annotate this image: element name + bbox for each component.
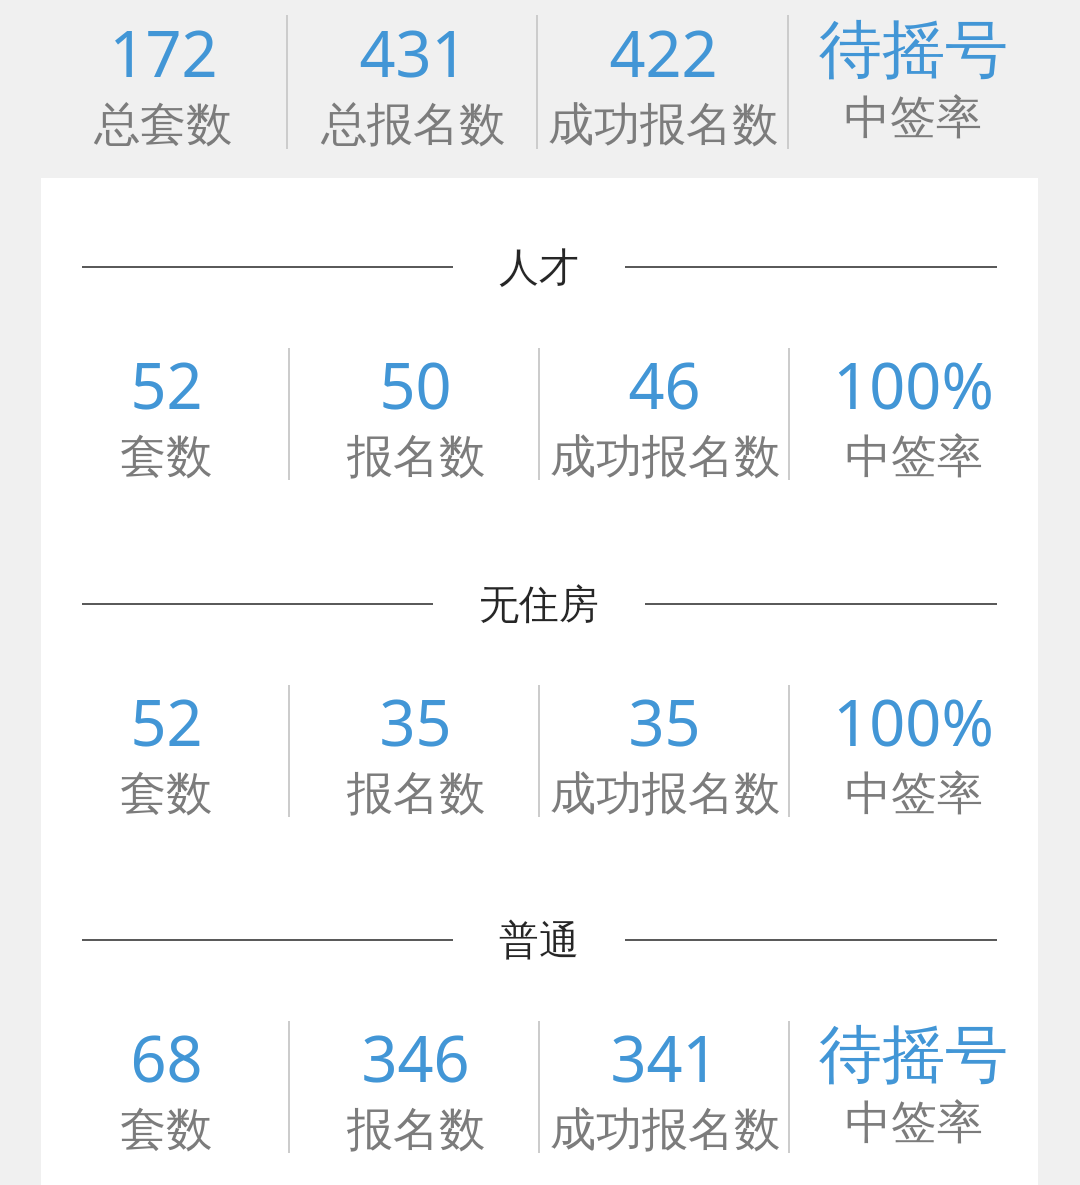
staticText: 成功报名数	[550, 428, 780, 486]
staticText: 待摇号	[819, 10, 1008, 89]
button[interactable]: 待摇号	[788, 10, 1038, 147]
staticText: 46	[628, 342, 701, 428]
staticText: 成功报名数	[550, 1101, 780, 1159]
button[interactable]: 35	[291, 679, 540, 823]
staticText: 套数	[120, 428, 212, 486]
button[interactable]: 68	[41, 1015, 291, 1159]
staticText: 总套数	[94, 96, 232, 154]
staticText: 总报名数	[321, 96, 505, 154]
staticText: 中签率	[845, 428, 983, 486]
staticText: 35	[628, 679, 701, 765]
staticText: 50	[379, 342, 452, 428]
button[interactable]: 46	[540, 342, 789, 486]
staticText: 普通	[499, 915, 579, 965]
button[interactable]: 50	[291, 342, 540, 486]
staticText: 中签率	[845, 1094, 983, 1152]
button[interactable]: 35	[540, 679, 789, 823]
staticText: 346	[361, 1015, 470, 1101]
staticText: 172	[109, 10, 218, 96]
staticText: 成功报名数	[548, 96, 778, 154]
button[interactable]: 100%	[789, 679, 1038, 823]
staticText: 68	[130, 1015, 203, 1101]
button[interactable]: 52	[41, 679, 291, 823]
staticText: 无住房	[479, 579, 599, 629]
staticText: 422	[609, 10, 718, 96]
staticText: 报名数	[347, 765, 485, 823]
staticText: 100%	[833, 342, 994, 428]
button[interactable]: 172	[38, 10, 288, 154]
button[interactable]: 普通	[82, 915, 997, 965]
staticText: 报名数	[347, 428, 485, 486]
staticText: 报名数	[347, 1101, 485, 1159]
staticText: 52	[130, 342, 203, 428]
staticText: 35	[379, 679, 452, 765]
button[interactable]: 100%	[789, 342, 1038, 486]
button[interactable]: 341	[540, 1015, 789, 1159]
staticText: 成功报名数	[550, 765, 780, 823]
staticText: 431	[359, 10, 468, 96]
staticText: 100%	[833, 679, 994, 765]
staticText: 中签率	[844, 89, 982, 147]
button[interactable]: 431	[288, 10, 538, 154]
button[interactable]: 52	[41, 342, 291, 486]
button[interactable]: 待摇号	[789, 1015, 1038, 1152]
staticText: 待摇号	[819, 1015, 1008, 1094]
staticText: 人才	[499, 242, 579, 292]
button[interactable]: 无住房	[82, 579, 997, 629]
other: 摇号结果统计	[0, 0, 1080, 1185]
button[interactable]: 346	[291, 1015, 540, 1159]
staticText: 套数	[120, 1101, 212, 1159]
staticText: 52	[130, 679, 203, 765]
staticText: 套数	[120, 765, 212, 823]
button[interactable]: 人才	[82, 242, 997, 292]
button[interactable]: 422	[538, 10, 788, 154]
staticText: 中签率	[845, 765, 983, 823]
staticText: 341	[610, 1015, 719, 1101]
